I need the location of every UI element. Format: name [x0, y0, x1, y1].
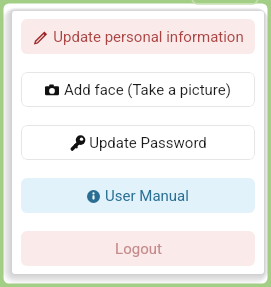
button[interactable]: Update Password: [21, 125, 255, 160]
staticText: Update personal information: [53, 28, 244, 46]
staticText: Logout: [115, 240, 162, 258]
button[interactable]: User Manual: [21, 178, 255, 213]
button[interactable]: Add face (Take a picture): [21, 72, 255, 107]
staticText: Update Password: [89, 134, 207, 152]
button[interactable]: Logout: [21, 231, 255, 266]
staticText: Add face (Take a picture): [64, 81, 231, 99]
button[interactable]: Update personal information: [21, 19, 255, 54]
staticText: User Manual: [105, 187, 189, 205]
